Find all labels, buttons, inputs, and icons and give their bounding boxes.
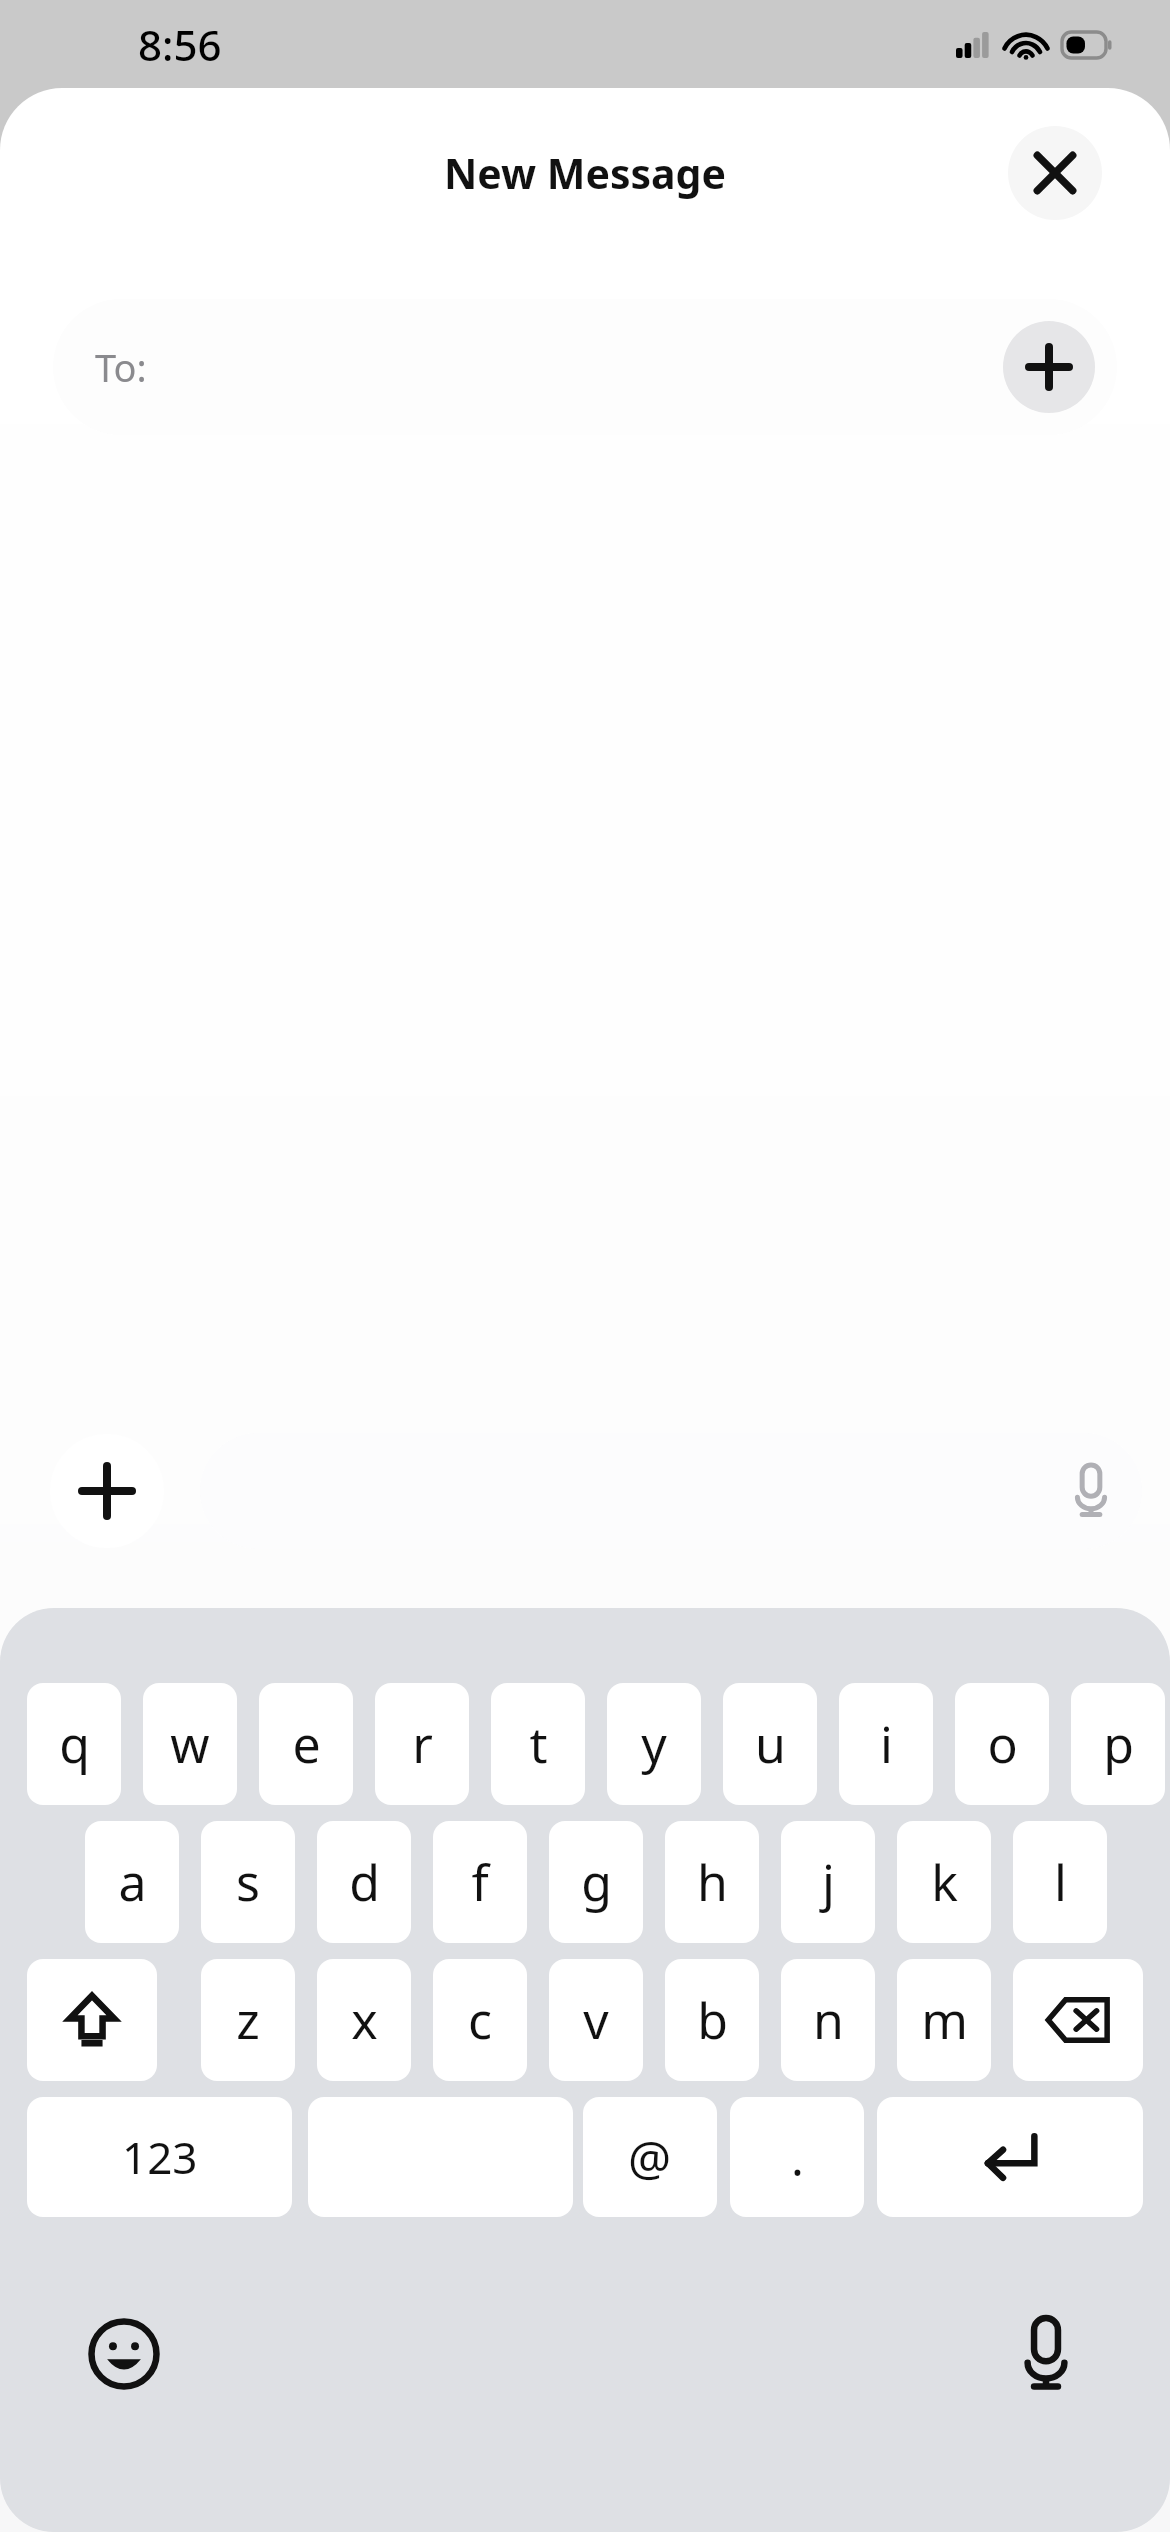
staticText: b <box>697 1986 728 2054</box>
staticText: m <box>921 1986 968 2054</box>
staticText: To: <box>95 341 147 393</box>
button[interactable]: To: <box>53 299 1117 435</box>
staticText: w <box>170 1710 210 1778</box>
staticText: k <box>931 1848 958 1916</box>
button[interactable]: a <box>85 1821 179 1943</box>
staticText: n <box>813 1986 844 2054</box>
button[interactable]: n <box>781 1959 875 2081</box>
button[interactable] <box>200 1433 1142 1549</box>
button[interactable]: Return <box>877 2097 1143 2217</box>
button[interactable]: b <box>665 1959 759 2081</box>
button[interactable]: f <box>433 1821 527 1943</box>
staticText: a <box>118 1848 147 1916</box>
button[interactable]: s <box>201 1821 295 1943</box>
staticText: p <box>1103 1710 1134 1778</box>
button[interactable]: x <box>317 1959 411 2081</box>
staticText: @ <box>628 2125 672 2190</box>
staticText: g <box>581 1848 612 1916</box>
button[interactable]: z <box>201 1959 295 2081</box>
staticText: y <box>641 1710 667 1778</box>
button[interactable]: Emoji <box>78 2308 170 2400</box>
button[interactable]: m <box>897 1959 991 2081</box>
staticText: o <box>987 1710 1018 1778</box>
button[interactable]: l <box>1013 1821 1107 1943</box>
button[interactable]: @ <box>583 2097 717 2217</box>
button[interactable]: Shift <box>27 1959 157 2081</box>
button[interactable]: g <box>549 1821 643 1943</box>
button[interactable]: e <box>259 1683 353 1805</box>
staticText: i <box>880 1710 893 1778</box>
staticText: v <box>583 1986 609 2054</box>
staticText: d <box>349 1848 380 1916</box>
button[interactable]: v <box>549 1959 643 2081</box>
button[interactable]: Add contact <box>1003 321 1095 413</box>
button[interactable]: Close <box>1008 126 1102 220</box>
button[interactable]: Voice input <box>1000 2308 1092 2400</box>
button[interactable]: r <box>375 1683 469 1805</box>
button[interactable]: u <box>723 1683 817 1805</box>
staticText: c <box>468 1986 492 2054</box>
button[interactable]: q <box>27 1683 121 1805</box>
staticText: j <box>822 1848 835 1916</box>
staticText: f <box>471 1848 489 1916</box>
staticText: l <box>1054 1848 1067 1916</box>
button[interactable]: k <box>897 1821 991 1943</box>
staticText: New Message <box>444 145 726 201</box>
staticText: . <box>791 2125 804 2190</box>
staticText: t <box>529 1710 548 1778</box>
button[interactable]: Attach <box>50 1434 164 1548</box>
button[interactable]: i <box>839 1683 933 1805</box>
button[interactable]: j <box>781 1821 875 1943</box>
button[interactable]: 123 <box>27 2097 292 2217</box>
staticText: z <box>236 1986 260 2054</box>
button[interactable]: Backspace <box>1013 1959 1143 2081</box>
staticText: s <box>236 1848 260 1916</box>
staticText: 123 <box>122 2127 198 2187</box>
button[interactable]: t <box>491 1683 585 1805</box>
staticText: r <box>412 1710 433 1778</box>
staticText: h <box>697 1848 728 1916</box>
staticText: q <box>59 1710 90 1778</box>
button[interactable]: h <box>665 1821 759 1943</box>
staticText: e <box>292 1710 321 1778</box>
button[interactable]: o <box>955 1683 1049 1805</box>
button[interactable]: y <box>607 1683 701 1805</box>
button[interactable]: p <box>1071 1683 1165 1805</box>
button[interactable]: c <box>433 1959 527 2081</box>
staticText: x <box>351 1986 378 2054</box>
staticText: 8:56 <box>138 16 222 73</box>
staticText: u <box>755 1710 786 1778</box>
button[interactable]: d <box>317 1821 411 1943</box>
button[interactable]: . <box>730 2097 864 2217</box>
button[interactable]: w <box>143 1683 237 1805</box>
